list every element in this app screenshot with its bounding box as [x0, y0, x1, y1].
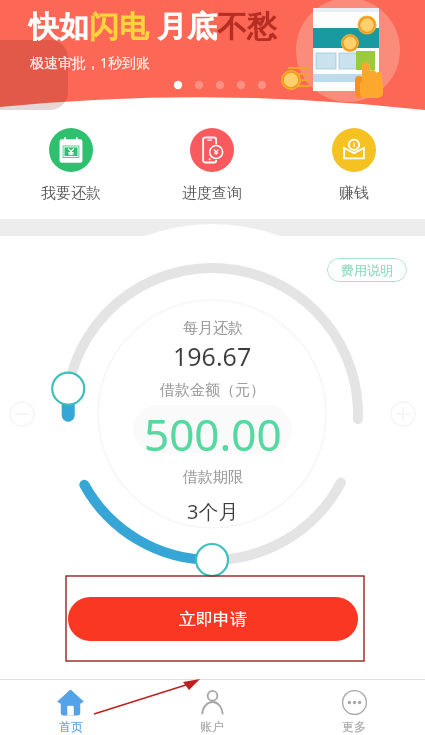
staticText: 费用说明 — [341, 262, 393, 278]
staticText: 196.67 — [173, 339, 252, 373]
button[interactable]: 账户 — [141, 680, 283, 734]
button[interactable]: 费用说明 — [327, 258, 407, 282]
staticText: 快如 — [29, 8, 89, 46]
staticText: 首页 — [59, 719, 83, 734]
button[interactable]: 首页 — [0, 680, 141, 734]
staticText: 进度查询 — [182, 184, 242, 203]
button[interactable]: 我要还款 — [0, 112, 141, 203]
staticText: 借款期限 — [183, 468, 243, 487]
staticText: 赚钱 — [339, 184, 369, 203]
button[interactable]: 进度查询 — [141, 112, 283, 203]
staticText: 500.00 — [144, 405, 282, 453]
staticText: 更多 — [342, 719, 366, 734]
staticText: 极速审批，1秒到账 — [30, 53, 151, 72]
staticText: 每月还款 — [183, 319, 243, 338]
staticText: 3个月 — [187, 498, 239, 525]
staticText: 借款金额（元） — [160, 381, 265, 400]
button[interactable]: 更多 — [283, 680, 425, 734]
button[interactable]: 赚钱 — [283, 112, 425, 203]
staticText: 立即申请 — [179, 609, 247, 630]
staticText: 我要还款 — [41, 184, 101, 203]
staticText: 账户 — [200, 719, 224, 734]
staticText: 闪电 — [89, 8, 149, 46]
staticText: 不愁 — [217, 8, 277, 46]
button[interactable]: 立即申请 — [68, 597, 358, 641]
staticText: 月底 — [157, 8, 217, 46]
